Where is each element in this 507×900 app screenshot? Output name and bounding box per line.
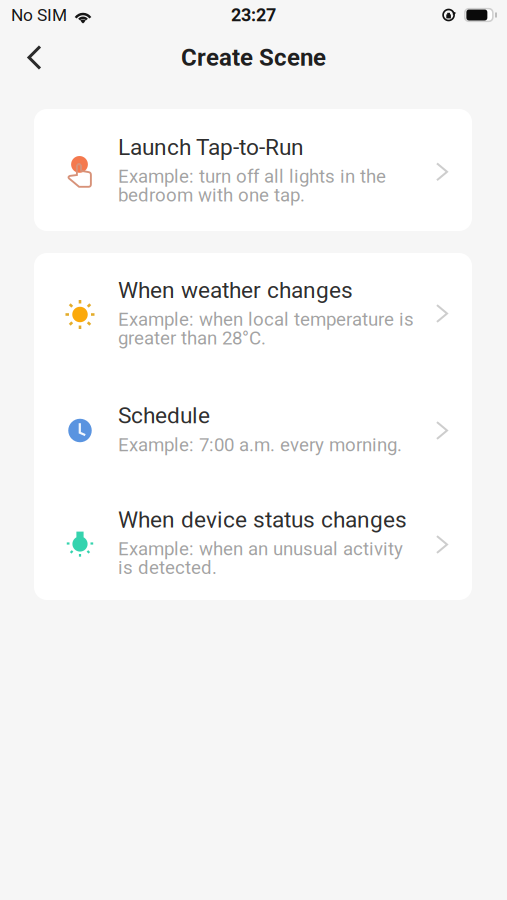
staticText: Example: turn off all lights in the bedr…: [118, 165, 386, 206]
staticText: Example: when an unusual activity is det…: [118, 538, 403, 579]
staticText: When device status changes: [118, 506, 407, 533]
button[interactable]: Schedule: [34, 373, 472, 485]
staticText: When weather changes: [118, 277, 353, 303]
staticText: Schedule: [118, 402, 210, 429]
button[interactable]: Launch Tap-to-Run: [34, 109, 472, 231]
button[interactable]: When device status changes: [34, 485, 472, 600]
staticText: No SIM: [11, 5, 67, 25]
staticText: Example: when local temperature is great…: [118, 308, 414, 349]
staticText: 23:27: [231, 4, 276, 26]
button[interactable]: When weather changes: [34, 253, 472, 373]
staticText: Example: 7:00 a.m. every morning.: [118, 434, 402, 456]
button[interactable]: Back: [0, 35, 58, 81]
staticText: Launch Tap-to-Run: [118, 134, 304, 160]
staticText: Create Scene: [181, 43, 326, 71]
